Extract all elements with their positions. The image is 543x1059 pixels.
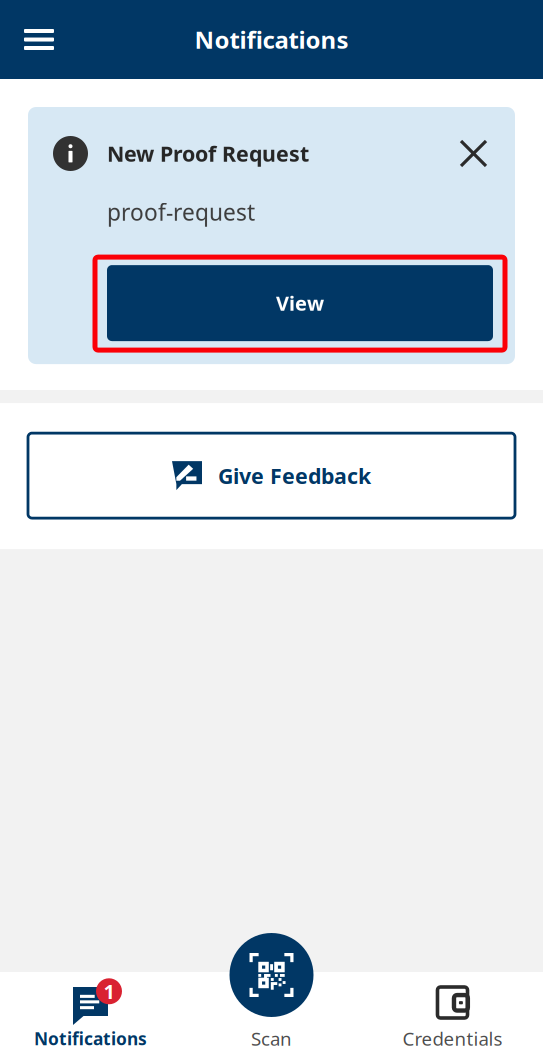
staticText: Scan — [251, 1026, 292, 1051]
button[interactable]: Give Feedback — [0, 403, 543, 549]
staticText: View — [276, 290, 324, 316]
staticText: New Proof Request — [107, 139, 309, 168]
staticText: proof-request — [107, 197, 255, 227]
button[interactable]: Menu — [0, 13, 72, 66]
button[interactable]: View — [95, 257, 505, 350]
staticText: Notifications — [34, 1027, 147, 1050]
button[interactable]: Scan QR code — [229, 933, 313, 1017]
button[interactable]: Dismiss — [457, 137, 490, 170]
button[interactable]: Scan — [181, 972, 362, 1059]
staticText: Credentials — [402, 1026, 502, 1051]
staticText: 1 — [103, 978, 114, 1005]
button[interactable]: Credentials — [362, 972, 543, 1059]
button[interactable]: 1 — [0, 972, 181, 1059]
staticText: Give Feedback — [218, 461, 371, 490]
staticText: Notifications — [194, 24, 348, 55]
